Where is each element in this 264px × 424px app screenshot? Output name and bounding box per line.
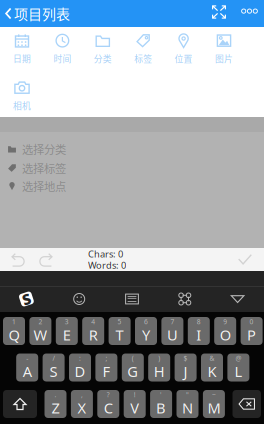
staticText: P bbox=[247, 325, 256, 345]
button[interactable]: Shift bbox=[3, 390, 37, 418]
staticText: Q bbox=[8, 325, 19, 345]
staticText: , bbox=[81, 390, 83, 399]
staticText: Chars: 0 bbox=[88, 248, 123, 260]
button[interactable]: Emoji bbox=[53, 286, 106, 312]
staticText: 3 bbox=[65, 317, 69, 326]
button[interactable]: Hide keyboard bbox=[211, 286, 264, 312]
button[interactable]: 选择地点 bbox=[0, 178, 264, 194]
button[interactable]: 选择标签 bbox=[0, 160, 264, 176]
staticText: 分类 bbox=[94, 52, 112, 65]
button[interactable]: 3 bbox=[56, 317, 78, 345]
button[interactable]: ) bbox=[148, 353, 170, 381]
button[interactable]: Undo bbox=[2, 248, 32, 271]
staticText: 8 bbox=[197, 317, 201, 326]
button[interactable]: 图片 bbox=[204, 33, 244, 65]
button[interactable]: " bbox=[176, 390, 198, 418]
button[interactable]: ~ bbox=[203, 390, 225, 418]
staticText: J bbox=[184, 362, 188, 381]
staticText: Y bbox=[142, 325, 150, 345]
button[interactable]: Delete bbox=[232, 390, 261, 418]
button[interactable]: 7 bbox=[161, 317, 183, 345]
staticText: ~ bbox=[212, 390, 216, 399]
staticText: " bbox=[186, 390, 189, 399]
staticText: 4 bbox=[91, 317, 95, 326]
staticText: 9 bbox=[223, 317, 227, 326]
staticText: ' bbox=[160, 390, 162, 399]
staticText: 相机 bbox=[13, 99, 31, 112]
button[interactable]: ; bbox=[95, 353, 117, 381]
button[interactable]: 2 bbox=[29, 317, 51, 345]
button[interactable]: 日期 bbox=[2, 33, 42, 65]
button[interactable]: , bbox=[71, 390, 93, 418]
staticText: N bbox=[182, 398, 193, 418]
button[interactable]: Input method bbox=[106, 286, 158, 312]
staticText: - bbox=[26, 354, 28, 363]
staticText: S bbox=[50, 362, 58, 381]
button[interactable]: - bbox=[16, 353, 38, 381]
button[interactable]: More options bbox=[235, 0, 264, 27]
button[interactable]: / bbox=[43, 353, 65, 381]
button[interactable]: 相机 bbox=[2, 80, 42, 112]
staticText: Z bbox=[51, 398, 59, 418]
staticText: X bbox=[77, 398, 86, 418]
staticText: A bbox=[23, 362, 32, 381]
staticText: 选择标签 bbox=[22, 160, 66, 176]
button[interactable]: . bbox=[44, 390, 66, 418]
staticText: ! bbox=[134, 390, 136, 399]
button[interactable]: Keyboard menu bbox=[158, 286, 211, 312]
button[interactable]: ? bbox=[97, 390, 119, 418]
button[interactable]: 时间 bbox=[42, 33, 83, 65]
button[interactable]: 6 bbox=[135, 317, 157, 345]
button[interactable]: : bbox=[69, 353, 91, 381]
staticText: T bbox=[116, 325, 124, 345]
staticText: U bbox=[167, 325, 178, 345]
button[interactable]: Done bbox=[230, 248, 260, 271]
button[interactable]: 4 bbox=[82, 317, 104, 345]
staticText: H bbox=[154, 362, 165, 381]
staticText: L bbox=[234, 362, 242, 381]
button[interactable]: $ bbox=[175, 353, 197, 381]
staticText: 时间 bbox=[53, 52, 71, 65]
button[interactable]: & bbox=[201, 353, 223, 381]
staticText: . bbox=[54, 390, 56, 399]
button[interactable]: ( bbox=[122, 353, 144, 381]
button[interactable]: ! bbox=[124, 390, 146, 418]
staticText: 2 bbox=[38, 317, 42, 326]
staticText: 0 bbox=[250, 317, 254, 326]
staticText: & bbox=[209, 354, 214, 363]
button[interactable]: 5 bbox=[109, 317, 131, 345]
staticText: B bbox=[156, 398, 166, 418]
button[interactable]: 选择分类 bbox=[0, 141, 264, 157]
staticText: $ bbox=[184, 354, 188, 363]
button[interactable]: 1 bbox=[3, 317, 25, 345]
staticText: ? bbox=[107, 390, 110, 399]
staticText: 位置 bbox=[175, 52, 193, 65]
button[interactable]: 标签 bbox=[123, 33, 163, 65]
button[interactable]: 位置 bbox=[163, 33, 204, 65]
staticText: @ bbox=[235, 354, 241, 363]
button[interactable]: ' bbox=[150, 390, 172, 418]
staticText: V bbox=[130, 398, 139, 418]
button[interactable]: 0 bbox=[241, 317, 263, 345]
button[interactable]: Sogou input bbox=[0, 286, 53, 312]
staticText: 5 bbox=[118, 317, 122, 326]
button[interactable]: Expand bbox=[203, 0, 235, 27]
staticText: 项目列表 bbox=[14, 3, 70, 24]
staticText: K bbox=[207, 362, 216, 381]
staticText: / bbox=[53, 354, 55, 363]
staticText: F bbox=[102, 362, 110, 381]
staticText: E bbox=[63, 325, 71, 345]
staticText: ) bbox=[158, 354, 160, 363]
button[interactable]: 8 bbox=[188, 317, 210, 345]
staticText: 选择地点 bbox=[22, 178, 66, 194]
staticText: 选择分类 bbox=[22, 141, 66, 157]
button[interactable]: @ bbox=[227, 353, 249, 381]
staticText: I bbox=[196, 325, 201, 345]
staticText: 1 bbox=[12, 317, 16, 326]
button[interactable]: 分类 bbox=[83, 33, 123, 65]
button[interactable]: 项目列表 bbox=[0, 0, 70, 27]
button[interactable]: Redo bbox=[32, 248, 62, 271]
staticText: D bbox=[74, 362, 85, 381]
staticText: O bbox=[220, 325, 231, 345]
button[interactable]: 9 bbox=[214, 317, 236, 345]
